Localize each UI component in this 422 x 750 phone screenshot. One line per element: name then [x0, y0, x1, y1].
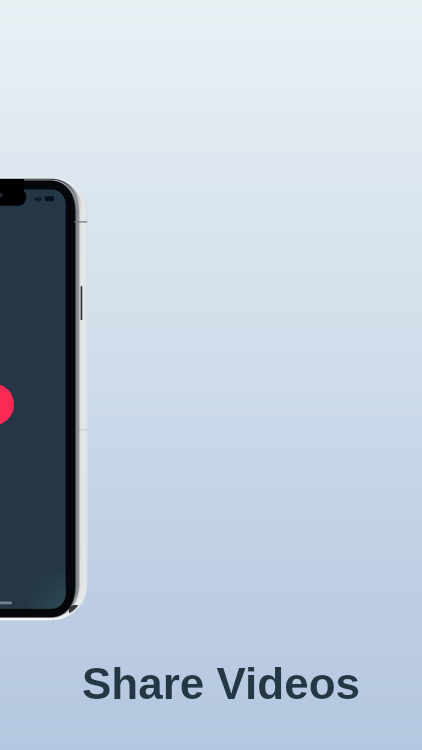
staticText: Share Videos — [82, 659, 360, 708]
button[interactable]: Share Videos — [82, 659, 360, 708]
